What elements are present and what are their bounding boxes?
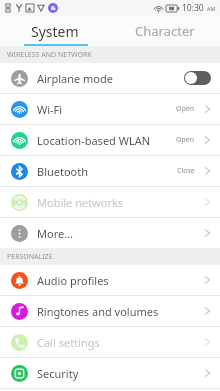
staticText: Bluetooth bbox=[37, 164, 89, 179]
button[interactable]: Airplane mode bbox=[0, 63, 220, 93]
staticText: Call settings bbox=[37, 335, 100, 350]
button[interactable]: Character bbox=[110, 16, 220, 46]
staticText: System bbox=[31, 22, 79, 41]
staticText: 10:30 bbox=[182, 2, 204, 14]
staticText: Open bbox=[176, 104, 195, 114]
button[interactable]: Bluetooth bbox=[0, 156, 220, 186]
button[interactable]: Ringtones and volumes bbox=[0, 296, 220, 326]
staticText: Character bbox=[135, 22, 195, 40]
staticText: PERSONALIZE bbox=[7, 252, 53, 262]
staticText: Mobile networks bbox=[37, 195, 124, 210]
staticText: & bbox=[51, 4, 56, 12]
button[interactable]: Toggle airplane mode bbox=[184, 71, 211, 85]
button[interactable]: Location-based WLAN bbox=[0, 125, 220, 155]
staticText: Open bbox=[176, 135, 195, 145]
staticText: Security bbox=[37, 366, 79, 381]
staticText: Ringtones and volumes bbox=[37, 304, 159, 319]
button[interactable]: System bbox=[0, 16, 110, 46]
button[interactable]: Audio profiles bbox=[0, 265, 220, 295]
staticText: Location-based WLAN bbox=[37, 133, 151, 148]
staticText: Close bbox=[177, 166, 195, 176]
button[interactable]: Call settings bbox=[0, 327, 220, 357]
button[interactable]: Security bbox=[0, 358, 220, 388]
button[interactable]: Mobile networks bbox=[0, 187, 220, 217]
staticText: Airplane mode bbox=[37, 71, 113, 86]
button[interactable]: More... bbox=[0, 218, 220, 248]
staticText: WIRELESS AND NETWORK bbox=[7, 50, 92, 60]
staticText: Audio profiles bbox=[37, 273, 109, 288]
staticText: Wi-Fi bbox=[37, 102, 63, 117]
button[interactable]: Wi-Fi bbox=[0, 94, 220, 124]
staticText: More... bbox=[37, 226, 74, 241]
staticText: AM bbox=[207, 5, 216, 12]
